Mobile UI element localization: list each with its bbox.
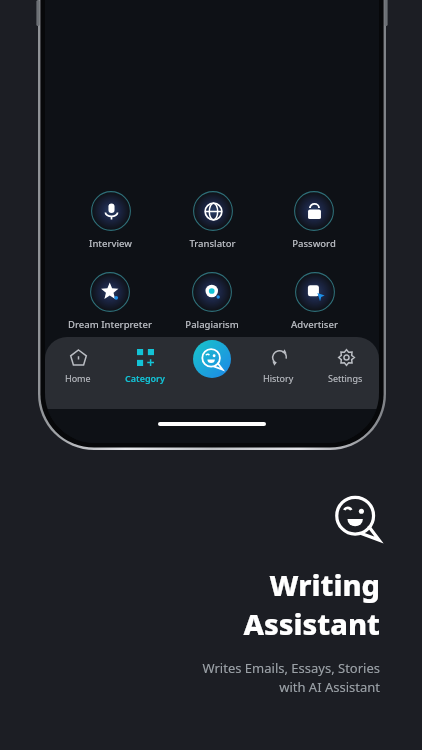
button[interactable]: Dream Interpreter [68, 270, 152, 333]
button[interactable]: Category [111, 347, 178, 409]
staticText: Writes Emails, Essays, Stories with AI A… [202, 659, 380, 696]
staticText: Writing [269, 565, 380, 604]
staticText: Dream Interpreter [68, 318, 152, 331]
staticText: Settings [328, 372, 363, 384]
button[interactable]: Settings [312, 347, 379, 409]
button[interactable]: Password [292, 189, 336, 252]
button[interactable]: History [245, 347, 312, 409]
button[interactable]: Translator [189, 189, 236, 252]
staticText: Assistant [243, 604, 380, 643]
staticText: Advertiser [291, 318, 338, 331]
staticText: Home [65, 372, 91, 384]
button[interactable]: Palagiarism [185, 270, 239, 333]
staticText: Interview [89, 237, 132, 250]
button[interactable]: Interview [89, 189, 132, 252]
button[interactable]: New chat [193, 340, 231, 378]
staticText: Translator [189, 237, 236, 250]
staticText: Storyteller [86, 399, 134, 412]
button[interactable]: Storyteller [86, 351, 134, 414]
staticText: Category [125, 372, 165, 384]
staticText: Palagiarism [185, 318, 239, 331]
button[interactable]: Home [45, 347, 111, 409]
staticText: History [263, 372, 294, 384]
button[interactable]: Advertiser [291, 270, 338, 333]
staticText: Password [292, 237, 336, 250]
